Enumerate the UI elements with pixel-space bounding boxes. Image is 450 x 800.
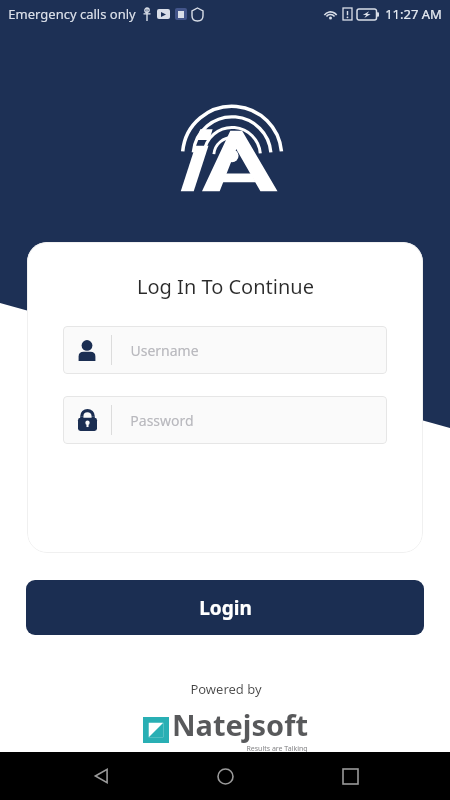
staticText: Login — [199, 595, 252, 621]
staticText: Powered by — [190, 680, 262, 698]
staticText: 11:27 AM — [385, 5, 442, 23]
staticText: Results are Talking — [246, 744, 308, 754]
staticText: Username — [130, 341, 199, 360]
button[interactable]: Back — [77, 752, 125, 800]
button[interactable]: Login — [26, 580, 424, 635]
button[interactable]: Recent apps — [326, 752, 374, 800]
staticText: Natejsoft — [172, 705, 308, 744]
staticText: Password — [130, 411, 194, 430]
staticText: Emergency calls only — [8, 5, 136, 23]
button[interactable]: Password — [63, 396, 387, 444]
staticText: Log In To Continue — [137, 273, 314, 300]
button[interactable]: Username — [63, 326, 387, 374]
button[interactable]: Home — [201, 752, 249, 800]
